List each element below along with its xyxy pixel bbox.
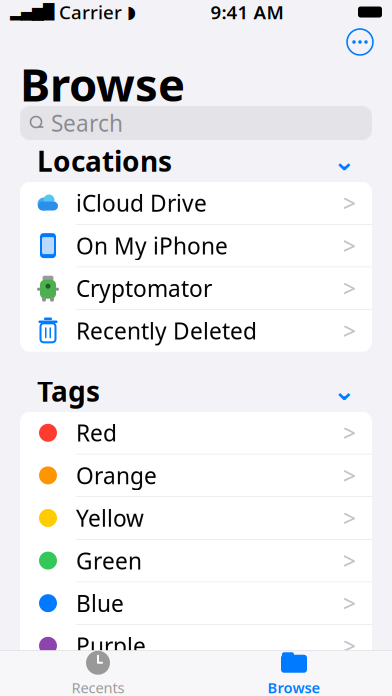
button[interactable]: iCloud Drive bbox=[20, 182, 372, 225]
staticText: > bbox=[343, 631, 356, 661]
staticText: Purple bbox=[76, 631, 146, 661]
staticText: Blue bbox=[76, 588, 124, 618]
staticText: Carrier bbox=[59, 0, 122, 24]
staticText: > bbox=[343, 188, 356, 218]
staticText: Yellow bbox=[76, 503, 144, 533]
staticText: iCloud Drive bbox=[76, 188, 207, 218]
staticText: 9:41 AM bbox=[210, 0, 283, 24]
staticText: > bbox=[343, 588, 356, 618]
staticText: Browse bbox=[267, 678, 320, 696]
button[interactable]: Browse bbox=[234, 649, 354, 696]
staticText: ◗ bbox=[127, 2, 136, 22]
button[interactable]: Gray bbox=[20, 667, 372, 696]
button[interactable]: On My iPhone bbox=[20, 225, 372, 267]
button[interactable]: Search bbox=[20, 106, 372, 140]
staticText: Locations bbox=[37, 142, 172, 180]
staticText: Orange bbox=[76, 460, 157, 490]
staticText: > bbox=[343, 273, 356, 303]
staticText: On My iPhone bbox=[76, 230, 228, 261]
staticText: Tags bbox=[37, 372, 100, 409]
staticText: > bbox=[343, 503, 356, 533]
button[interactable]: Collapse Locations bbox=[333, 150, 355, 172]
staticText: Browse bbox=[20, 54, 185, 114]
staticText: > bbox=[343, 460, 356, 490]
staticText: > bbox=[343, 316, 356, 346]
button[interactable]: Purple bbox=[20, 625, 372, 667]
staticText: ▂▄▆█ bbox=[10, 4, 54, 20]
staticText: Green bbox=[76, 545, 142, 576]
staticText: Red bbox=[76, 418, 117, 448]
button[interactable]: Collapse Tags bbox=[333, 380, 355, 402]
staticText: ⌄ bbox=[333, 376, 355, 406]
staticText: Search bbox=[51, 108, 123, 138]
button[interactable]: Cryptomator bbox=[20, 267, 372, 310]
button[interactable]: Orange bbox=[20, 454, 372, 497]
staticText: > bbox=[343, 545, 356, 576]
staticText: Gray bbox=[76, 673, 127, 696]
staticText: Recents bbox=[71, 678, 124, 696]
staticText: > bbox=[343, 418, 356, 448]
button[interactable]: Recents bbox=[38, 649, 158, 696]
staticText: Recently Deleted bbox=[76, 316, 257, 346]
button[interactable]: Yellow bbox=[20, 497, 372, 540]
button[interactable]: More bbox=[340, 24, 380, 60]
button[interactable]: Green bbox=[20, 540, 372, 582]
button[interactable]: Red bbox=[20, 412, 372, 454]
staticText: Cryptomator bbox=[76, 273, 212, 303]
button[interactable]: Recently Deleted bbox=[20, 310, 372, 352]
button[interactable]: Blue bbox=[20, 582, 372, 625]
staticText: > bbox=[343, 230, 356, 261]
staticText: ⌄ bbox=[333, 146, 355, 176]
